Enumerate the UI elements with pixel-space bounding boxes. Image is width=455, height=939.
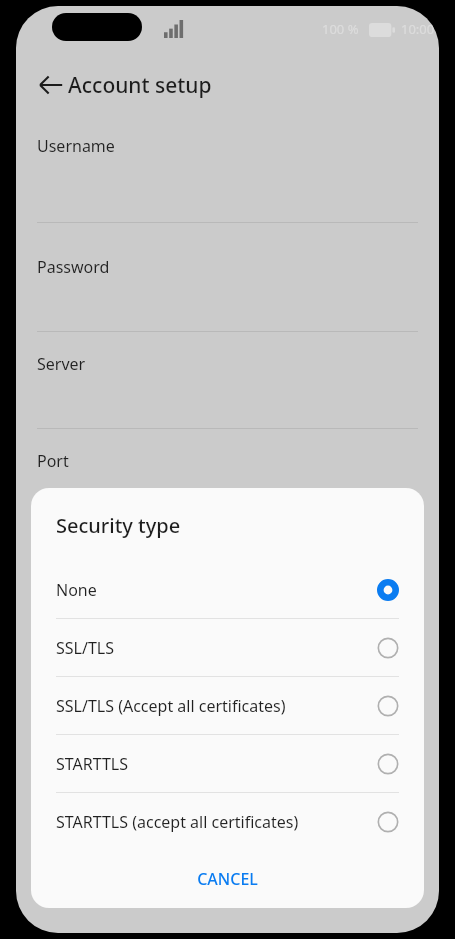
- staticText: STARTTLS (accept all certificates): [56, 811, 299, 833]
- button[interactable]: SSL/TLS (Accept all certificates): [31, 677, 424, 734]
- staticText: 100 %: [322, 20, 359, 38]
- staticText: Account setup: [68, 71, 212, 100]
- staticText: Password: [37, 256, 110, 278]
- button[interactable]: STARTTLS (accept all certificates): [31, 793, 424, 850]
- staticText: SSL/TLS: [56, 637, 114, 659]
- staticText: Server: [37, 353, 86, 375]
- staticText: Port: [37, 450, 69, 472]
- staticText: CANCEL: [197, 868, 258, 890]
- staticText: 10:00: [401, 20, 435, 38]
- button[interactable]: SSL/TLS: [31, 619, 424, 676]
- button[interactable]: Password: [37, 256, 439, 282]
- staticText: Username: [37, 135, 115, 157]
- staticText: SSL/TLS (Accept all certificates): [56, 695, 286, 717]
- staticText: Security type: [56, 512, 181, 539]
- staticText: None: [56, 579, 97, 601]
- button[interactable]: Server: [37, 353, 439, 379]
- button[interactable]: Port: [37, 450, 439, 476]
- button[interactable]: Back: [30, 64, 72, 106]
- button[interactable]: None: [31, 561, 424, 618]
- button[interactable]: CANCEL: [31, 850, 424, 908]
- button[interactable]: STARTTLS: [31, 735, 424, 792]
- staticText: STARTTLS: [56, 753, 129, 775]
- button[interactable]: Username: [37, 135, 439, 161]
